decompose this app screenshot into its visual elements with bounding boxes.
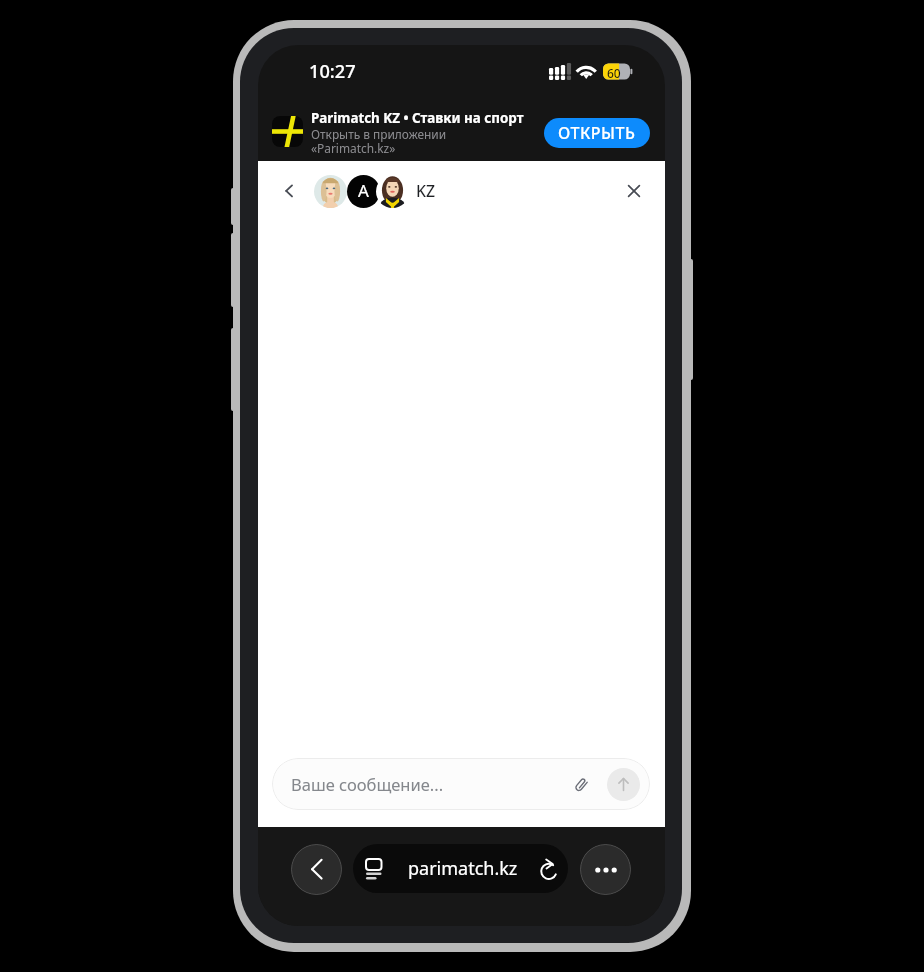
staticText: 60 xyxy=(607,65,621,81)
button[interactable]: parimatch.kz xyxy=(353,844,568,893)
button[interactable]: Close xyxy=(618,175,650,207)
button[interactable]: Ваше сообщение... xyxy=(272,758,650,810)
staticText: KZ xyxy=(416,180,436,202)
staticText: Открыть в приложении «Parimatch.kz» xyxy=(311,126,447,157)
staticText: Ваше сообщение... xyxy=(291,773,444,795)
button[interactable]: More options xyxy=(580,844,631,895)
staticText: Parimatch KZ • Ставки на спорт xyxy=(311,109,524,127)
staticText: 10:27 xyxy=(309,59,356,84)
staticText: ОТКРЫТЬ xyxy=(558,122,636,144)
button[interactable]: Attach file xyxy=(567,771,595,799)
button[interactable]: Back xyxy=(291,844,342,895)
staticText: parimatch.kz xyxy=(408,856,518,881)
button[interactable]: Back xyxy=(276,175,302,207)
button[interactable]: Send message xyxy=(607,768,640,801)
staticText: A xyxy=(358,179,369,202)
button[interactable]: ОТКРЫТЬ xyxy=(544,118,650,148)
